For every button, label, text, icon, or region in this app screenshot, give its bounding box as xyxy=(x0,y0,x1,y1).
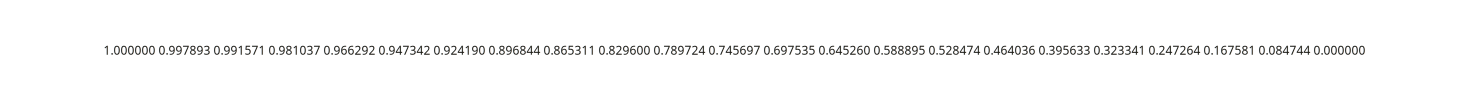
staticText: 1.000000 0.997893 0.991571 0.981037 0.96… xyxy=(103,42,1365,58)
